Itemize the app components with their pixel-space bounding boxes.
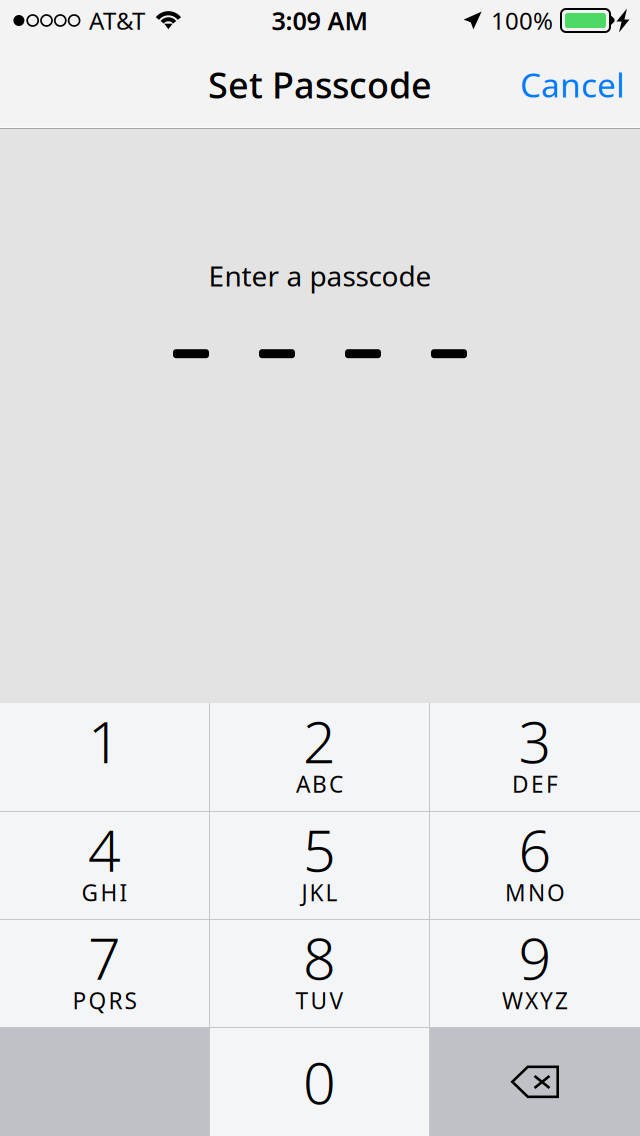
button[interactable]: 9 — [430, 920, 640, 1027]
button[interactable]: 3 — [430, 703, 640, 811]
staticText: GHI — [81, 877, 127, 907]
staticText: 1 — [88, 703, 121, 779]
staticText: ABC — [296, 769, 343, 799]
staticText: WXYZ — [502, 985, 568, 1015]
staticText: Set Passcode — [208, 61, 432, 108]
button[interactable]: 8 — [210, 920, 429, 1027]
staticText: 5 — [303, 811, 336, 887]
staticText: 4 — [88, 811, 121, 887]
staticText: JKL — [301, 877, 337, 907]
staticText: 9 — [518, 919, 551, 995]
staticText: 3:09 AM — [271, 4, 368, 37]
button[interactable]: 1 — [0, 703, 209, 811]
staticText: AT&T — [89, 5, 145, 36]
button[interactable]: 5 — [210, 812, 429, 919]
staticText: 100% — [491, 5, 553, 36]
button[interactable]: 2 — [210, 703, 429, 811]
staticText: TUV — [295, 985, 343, 1015]
staticText: Cancel — [520, 62, 625, 107]
staticText: MNO — [505, 877, 565, 907]
button[interactable]: 7 — [0, 920, 209, 1027]
staticText: DEF — [512, 769, 558, 799]
staticText: 2 — [303, 703, 336, 779]
button[interactable]: 4 — [0, 812, 209, 919]
staticText: 6 — [518, 811, 551, 887]
staticText: 7 — [88, 919, 121, 995]
button[interactable]: 0 — [210, 1028, 429, 1136]
staticText: PQRS — [72, 985, 136, 1015]
button[interactable]: 6 — [430, 812, 640, 919]
staticText: 0 — [303, 1044, 336, 1120]
button[interactable]: Cancel — [511, 48, 634, 121]
button[interactable]: Delete — [430, 1028, 640, 1136]
staticText: 8 — [303, 919, 336, 995]
staticText: 3 — [518, 703, 551, 779]
staticText: Enter a passcode — [208, 257, 431, 294]
